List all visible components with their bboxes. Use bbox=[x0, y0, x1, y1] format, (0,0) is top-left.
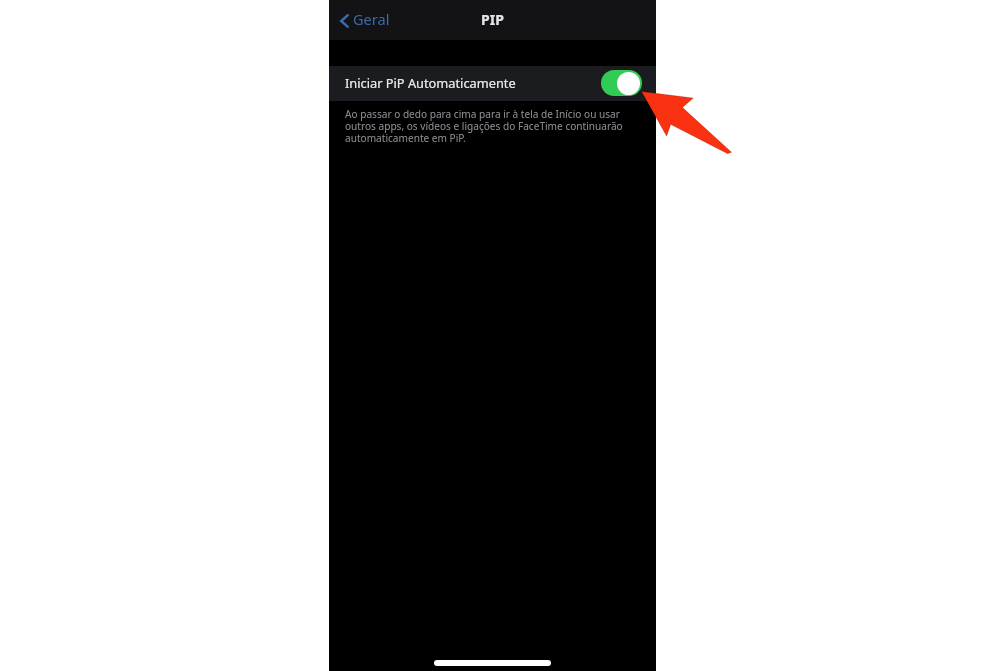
staticText: Iniciar PiP Automaticamente bbox=[345, 74, 516, 91]
button[interactable]: Iniciar PiP Automaticamente bbox=[329, 66, 656, 101]
staticText: Geral bbox=[353, 9, 390, 29]
button[interactable]: Iniciar PiP Automaticamente, ativado bbox=[601, 70, 642, 96]
other: Seta de destaque bbox=[0, 0, 984, 671]
button[interactable]: Voltar para Geral bbox=[339, 9, 390, 29]
staticText: Ao passar o dedo para cima para ir à tel… bbox=[345, 107, 634, 145]
staticText: PIP bbox=[481, 10, 504, 29]
